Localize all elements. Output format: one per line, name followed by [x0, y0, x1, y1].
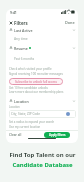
- staticText: Resume: [14, 46, 28, 51]
- button[interactable]: Subscribe to unlock full access: [9, 78, 63, 85]
- staticText: Location: [9, 105, 20, 109]
- button[interactable]: Location: [9, 98, 76, 104]
- staticText: Filters: [14, 20, 28, 26]
- button[interactable]: Resume: [9, 45, 76, 51]
- staticText: Done: [65, 20, 75, 25]
- staticText: Use my current location: [9, 125, 41, 129]
- staticText: City, State, ZIP Code: [11, 112, 40, 116]
- staticText: Last Active: [14, 28, 33, 33]
- button[interactable]: Close filters: [9, 19, 35, 26]
- staticText: Get 10 free candidate unlocks: [9, 86, 48, 90]
- staticText: Check who's visited your profile: [9, 67, 52, 71]
- staticText: Past 6 months: [14, 57, 35, 61]
- staticText: 9:41: [10, 10, 17, 15]
- staticText: Learn more about our membership plans: [9, 90, 64, 94]
- staticText: Find Top Talent on our: [9, 151, 76, 159]
- staticText: Apply filters: [49, 133, 66, 137]
- button[interactable]: City, State, ZIP Code: [9, 110, 76, 118]
- staticText: Signal receiving 100 recruiter messages: [9, 72, 63, 76]
- button[interactable]: Clear all: [9, 132, 23, 138]
- staticText: Clear all: [9, 133, 22, 137]
- button[interactable]: Last Active: [9, 27, 76, 33]
- staticText: Location: [14, 99, 29, 104]
- button[interactable]: Apply filters: [44, 132, 70, 138]
- staticText: Subscribe to unlock full access: [15, 80, 57, 84]
- button[interactable]: Done: [62, 19, 75, 26]
- staticText: Set a radius to expand your search: [9, 120, 55, 124]
- staticText: Any time: [14, 36, 28, 40]
- staticText: Candidate Database: [12, 161, 73, 169]
